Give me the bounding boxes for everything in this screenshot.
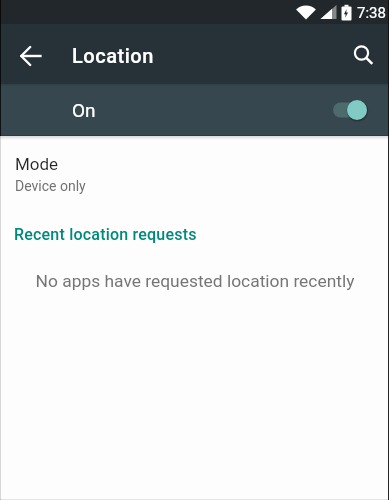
staticText: Location [72,44,154,67]
staticText: Mode [15,154,59,174]
staticText: 7:38 [357,4,386,22]
button[interactable]: Mode [0,140,390,204]
button[interactable]: On [0,84,390,136]
button[interactable] [347,39,381,73]
staticText: No apps have requested location recently [0,271,390,291]
button[interactable] [14,39,48,73]
staticText: Device only [15,178,86,194]
staticText: Recent location requests [14,225,197,244]
staticText: On [72,99,96,121]
